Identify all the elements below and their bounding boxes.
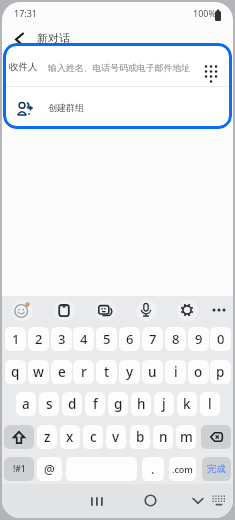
button[interactable]: [6, 26, 32, 52]
button[interactable]: 3: [51, 327, 72, 351]
button[interactable]: [133, 297, 159, 323]
button[interactable]: 9: [188, 327, 209, 351]
staticText: b: [136, 428, 145, 446]
button[interactable]: 5: [96, 327, 117, 351]
button[interactable]: 收件人: [3, 43, 232, 86]
button[interactable]: [92, 297, 118, 323]
staticText: 100%: [193, 7, 216, 19]
button[interactable]: j: [154, 392, 174, 416]
staticText: 5: [103, 330, 111, 348]
button[interactable]: i: [165, 360, 186, 384]
button[interactable]: 8: [165, 327, 186, 351]
button[interactable]: 2: [28, 327, 49, 351]
button[interactable]: r: [73, 360, 94, 384]
button[interactable]: o: [188, 360, 209, 384]
staticText: j: [162, 395, 166, 413]
button[interactable]: .: [142, 457, 164, 481]
button[interactable]: p: [210, 360, 231, 384]
staticText: 收件人: [9, 61, 38, 73]
button[interactable]: m: [176, 425, 196, 449]
button[interactable]: [4, 425, 34, 449]
staticText: p: [216, 363, 225, 381]
staticText: h: [137, 395, 146, 413]
staticText: r: [81, 363, 87, 381]
button[interactable]: [90, 496, 104, 507]
staticText: i: [174, 363, 178, 381]
staticText: 2: [35, 330, 43, 348]
button[interactable]: 0: [210, 327, 231, 351]
button[interactable]: d: [62, 392, 82, 416]
button[interactable]: c: [83, 425, 103, 449]
staticText: 创建群组: [48, 102, 84, 113]
staticText: y: [126, 363, 134, 381]
button[interactable]: u: [142, 360, 163, 384]
button[interactable]: !#1: [4, 457, 34, 481]
button[interactable]: w: [28, 360, 49, 384]
button[interactable]: [192, 497, 204, 505]
staticText: .com: [172, 463, 193, 475]
button[interactable]: 完成: [202, 457, 231, 481]
button[interactable]: y: [119, 360, 140, 384]
button[interactable]: .com: [169, 457, 196, 481]
staticText: 6: [126, 330, 134, 348]
staticText: 输入姓名、电话号码或电子邮件地址: [48, 62, 191, 73]
staticText: g: [114, 395, 123, 413]
staticText: c: [90, 428, 97, 446]
button[interactable]: [211, 494, 227, 508]
staticText: 新对话: [37, 31, 70, 45]
button[interactable]: x: [60, 425, 80, 449]
staticText: .: [151, 461, 155, 477]
button[interactable]: z: [37, 425, 57, 449]
button[interactable]: k: [177, 392, 197, 416]
staticText: a: [22, 395, 30, 413]
button[interactable]: 7: [142, 327, 163, 351]
staticText: 17:31: [14, 7, 38, 19]
staticText: !#1: [13, 463, 26, 475]
button[interactable]: [206, 297, 232, 323]
staticText: w: [33, 363, 44, 381]
staticText: f: [93, 395, 98, 413]
button[interactable]: [201, 425, 231, 449]
button[interactable]: b: [130, 425, 150, 449]
staticText: d: [68, 395, 77, 413]
staticText: 7: [149, 330, 157, 348]
button[interactable]: 6: [119, 327, 140, 351]
button[interactable]: v: [106, 425, 126, 449]
staticText: t: [104, 363, 110, 381]
button[interactable]: [51, 297, 77, 323]
button[interactable]: 1: [5, 327, 26, 351]
button[interactable]: t: [96, 360, 117, 384]
button[interactable]: g: [108, 392, 128, 416]
staticText: 8: [172, 330, 180, 348]
staticText: o: [194, 363, 203, 381]
staticText: 4: [80, 330, 88, 348]
button[interactable]: [174, 297, 200, 323]
staticText: m: [180, 428, 193, 446]
staticText: e: [58, 363, 66, 381]
staticText: 1: [12, 330, 20, 348]
staticText: 完成: [207, 463, 226, 475]
button[interactable]: 4: [73, 327, 94, 351]
button[interactable]: f: [85, 392, 105, 416]
button[interactable]: @: [37, 457, 62, 481]
staticText: z: [44, 428, 51, 446]
staticText: l: [208, 395, 212, 413]
staticText: v: [112, 428, 120, 446]
button[interactable]: l: [200, 392, 220, 416]
button[interactable]: 创建群组: [3, 87, 232, 129]
staticText: x: [66, 428, 74, 446]
button[interactable]: s: [39, 392, 59, 416]
button[interactable]: n: [153, 425, 173, 449]
staticText: q: [11, 363, 20, 381]
button[interactable]: [144, 494, 157, 507]
button[interactable]: a: [16, 392, 36, 416]
button[interactable]: e: [51, 360, 72, 384]
staticText: k: [183, 395, 191, 413]
staticText: 0: [217, 330, 225, 348]
button[interactable]: [9, 297, 35, 323]
staticText: u: [148, 363, 157, 381]
button[interactable]: q: [5, 360, 26, 384]
button[interactable]: h: [131, 392, 151, 416]
staticText: 9: [195, 330, 203, 348]
